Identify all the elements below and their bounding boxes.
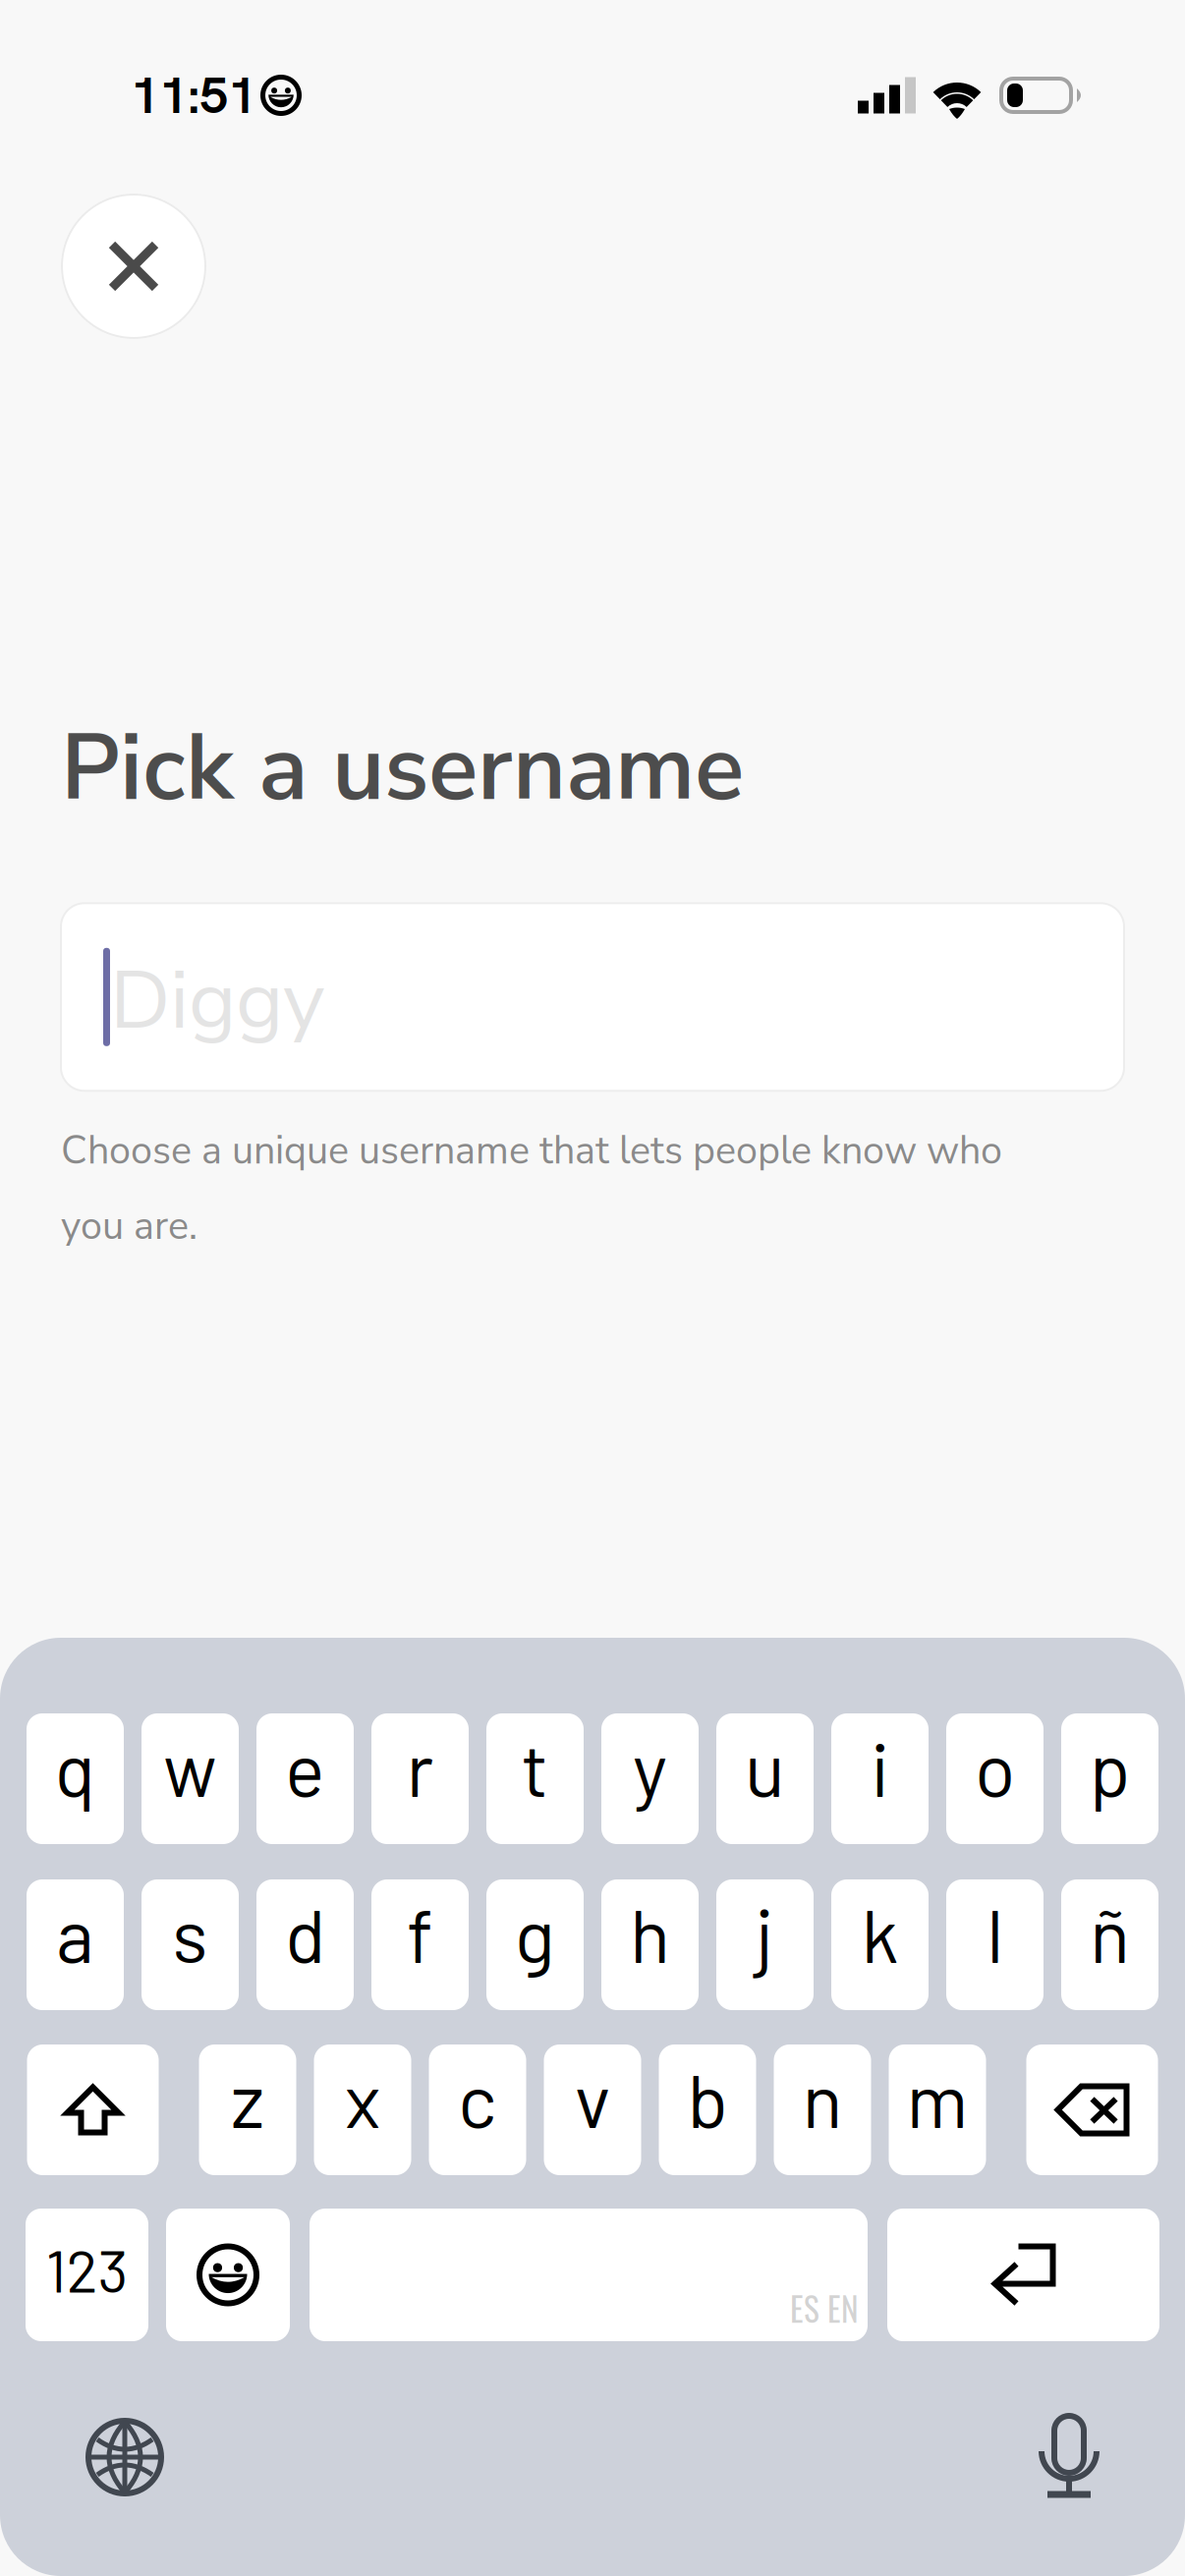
button[interactable]: z: [199, 2044, 296, 2175]
button[interactable]: y: [601, 1713, 699, 1844]
button[interactable]: a: [27, 1879, 124, 2010]
button[interactable]: Next keyboard: [85, 2418, 164, 2496]
button[interactable]: x: [314, 2044, 411, 2175]
button[interactable]: h: [601, 1879, 699, 2010]
button[interactable]: g: [486, 1879, 584, 2010]
button[interactable]: r: [371, 1713, 469, 1844]
button[interactable]: f: [371, 1879, 469, 2010]
button[interactable]: [166, 2209, 290, 2341]
button[interactable]: Dictate: [1039, 2416, 1100, 2498]
button[interactable]: j: [716, 1879, 814, 2010]
staticText: x: [345, 2053, 380, 2143]
staticText: ñ: [1090, 1888, 1130, 1978]
button[interactable]: v: [544, 2044, 641, 2175]
staticText: l: [987, 1888, 1003, 1978]
staticText: ES EN: [790, 2284, 859, 2332]
staticText: o: [975, 1722, 1015, 1812]
button[interactable]: o: [946, 1713, 1044, 1844]
button[interactable]: b: [659, 2044, 756, 2175]
button[interactable]: ES EN: [310, 2209, 868, 2341]
button[interactable]: l: [946, 1879, 1044, 2010]
button[interactable]: [887, 2209, 1159, 2341]
staticText: 123: [46, 2234, 128, 2304]
button[interactable]: Close: [61, 194, 206, 339]
button[interactable]: m: [889, 2044, 986, 2175]
staticText: b: [687, 2053, 728, 2143]
button[interactable]: 123: [26, 2209, 148, 2341]
button[interactable]: i: [831, 1713, 929, 1844]
button[interactable]: [27, 2044, 159, 2175]
staticText: k: [861, 1888, 899, 1978]
staticText: d: [285, 1888, 325, 1978]
button[interactable]: n: [774, 2044, 871, 2175]
staticText: u: [745, 1722, 785, 1812]
button[interactable]: ñ: [1061, 1879, 1158, 2010]
staticText: g: [515, 1888, 555, 1978]
staticText: Diggy: [110, 946, 324, 1056]
staticText: a: [56, 1888, 94, 1978]
staticText: r: [406, 1722, 434, 1812]
staticText: p: [1089, 1722, 1130, 1812]
staticText: w: [163, 1722, 217, 1812]
staticText: t: [521, 1722, 549, 1812]
staticText: Choose a unique username that lets peopl…: [61, 1124, 1002, 1253]
button[interactable]: e: [256, 1713, 354, 1844]
button[interactable]: p: [1061, 1713, 1158, 1844]
button[interactable]: k: [831, 1879, 929, 2010]
button[interactable]: u: [716, 1713, 814, 1844]
staticText: n: [802, 2053, 843, 2143]
button[interactable]: w: [141, 1713, 239, 1844]
staticText: c: [458, 2053, 497, 2143]
staticText: v: [575, 2053, 610, 2143]
staticText: s: [172, 1888, 208, 1978]
button[interactable]: t: [486, 1713, 584, 1844]
button[interactable]: s: [141, 1879, 239, 2010]
staticText: z: [231, 2053, 264, 2143]
staticText: y: [633, 1722, 667, 1812]
button[interactable]: q: [27, 1713, 124, 1844]
staticText: q: [55, 1722, 96, 1812]
button[interactable]: c: [429, 2044, 526, 2175]
staticText: f: [407, 1888, 433, 1978]
staticText: m: [906, 2053, 968, 2143]
staticText: h: [630, 1888, 670, 1978]
staticText: 11:51: [131, 62, 256, 129]
staticText: e: [285, 1722, 325, 1812]
staticText: Pick a username: [61, 706, 744, 831]
staticText: i: [871, 1722, 889, 1812]
button[interactable]: d: [256, 1879, 354, 2010]
button[interactable]: [1026, 2044, 1158, 2175]
staticText: j: [756, 1888, 774, 1978]
